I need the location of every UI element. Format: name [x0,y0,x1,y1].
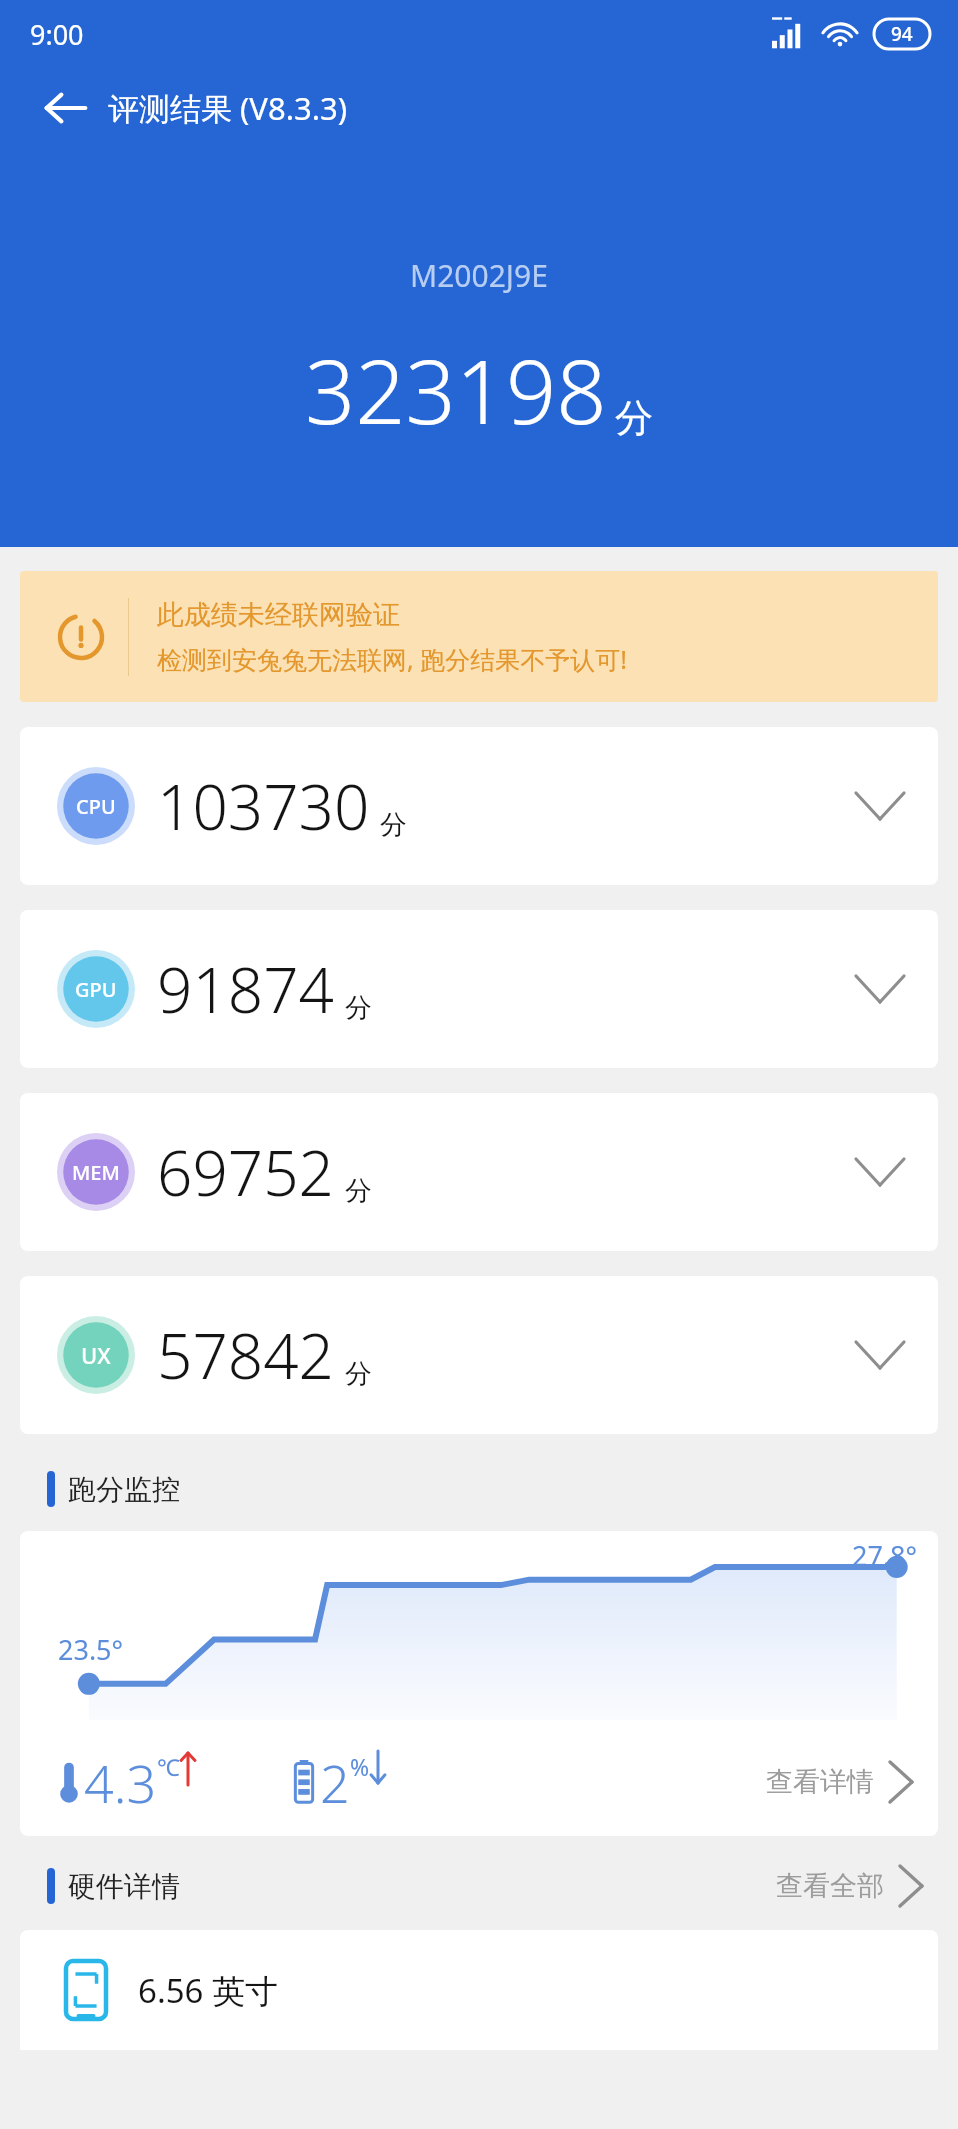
staticText: 分 [345,991,372,1025]
staticText: 9:00 [30,16,84,53]
staticText: M2002J9E [410,255,548,296]
staticText: 69752 [157,1130,335,1214]
staticText: 91874 [157,947,335,1031]
button[interactable]: UX [20,1276,938,1434]
button[interactable]: Expand [840,1132,920,1212]
staticText: 查看全部 [776,1869,884,1903]
staticText: 分 [615,394,653,442]
staticText: 分 [380,808,407,842]
staticText: 跑分监控 [68,1472,180,1507]
button[interactable]: CPU [20,727,938,885]
staticText: ℃ [157,1751,180,1782]
staticText: 检测到安兔兔无法联网, 跑分结果不予认可! [157,642,627,676]
button[interactable]: Expand [840,949,920,1029]
staticText: 103730 [157,764,370,848]
button[interactable]: GPU [20,910,938,1068]
staticText: GPU [75,976,117,1003]
staticText: 323198 [305,330,607,450]
button[interactable]: Expand [840,1315,920,1395]
staticText: 硬件详情 [68,1869,180,1904]
button[interactable]: 查看详情 [756,1746,924,1818]
button[interactable]: Expand [840,766,920,846]
button[interactable]: MEM [20,1093,938,1251]
button[interactable]: 硬件详情 [20,1858,938,1914]
staticText: 23.5° [58,1631,124,1668]
staticText: 分 [345,1174,372,1208]
staticText: 此成绩未经联网验证 [157,598,400,632]
staticText: 2 [320,1747,350,1818]
staticText: CPU [76,793,116,820]
staticText: 评测结果 (V8.3.3) [108,87,348,129]
staticText: 分 [345,1357,372,1391]
button[interactable]: Back [28,70,104,146]
staticText: 57842 [157,1313,335,1397]
staticText: 4.3 [84,1747,157,1818]
staticText: 6.56 英寸 [138,1968,279,2013]
staticText: MEM [72,1159,120,1186]
staticText: 27.8° [852,1537,918,1574]
staticText: 94 [891,21,913,47]
staticText: UX [81,1340,111,1370]
staticText: 查看详情 [766,1765,874,1799]
button[interactable]: 此成绩未经联网验证 [20,571,938,702]
button[interactable]: 6.56 英寸 [20,1930,938,2050]
staticText: % [350,1751,370,1782]
